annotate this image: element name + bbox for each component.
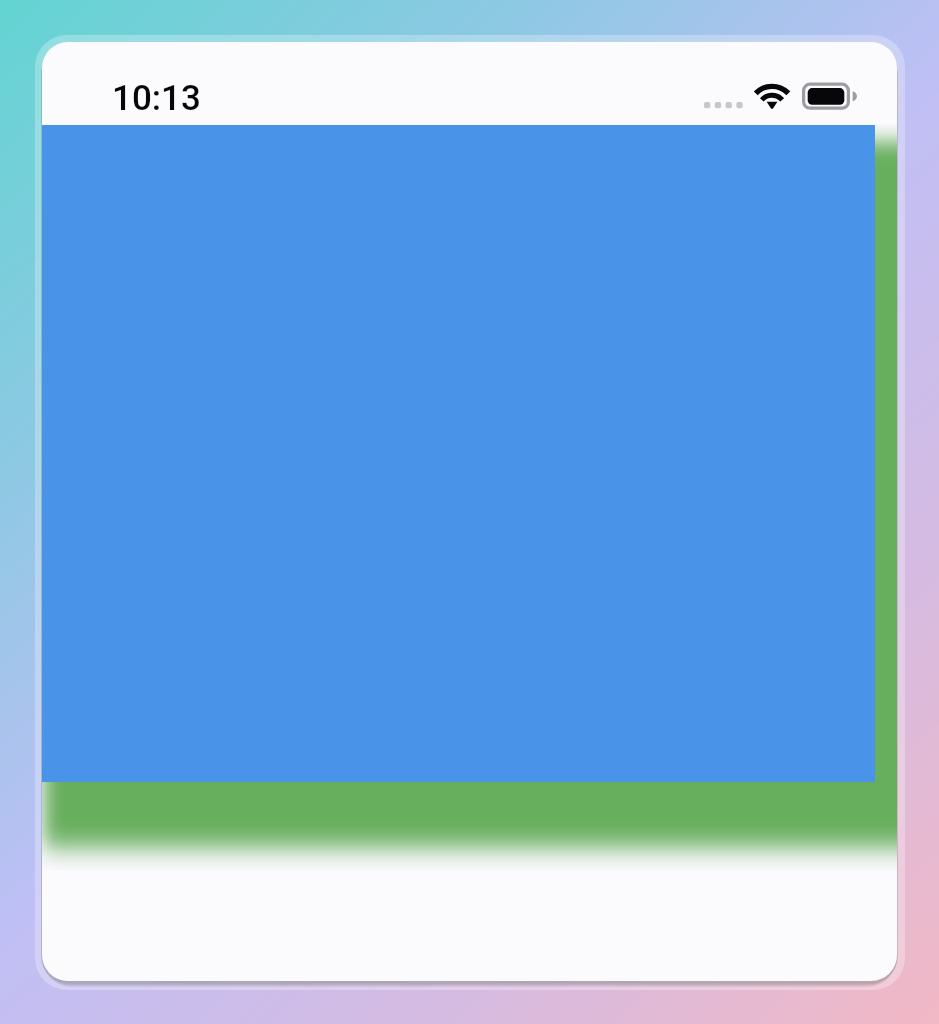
- staticText: 10:13: [112, 78, 201, 119]
- other: Wi-Fi: [753, 76, 791, 109]
- other: Cellular signal: [704, 76, 743, 109]
- other: Battery full: [802, 76, 858, 109]
